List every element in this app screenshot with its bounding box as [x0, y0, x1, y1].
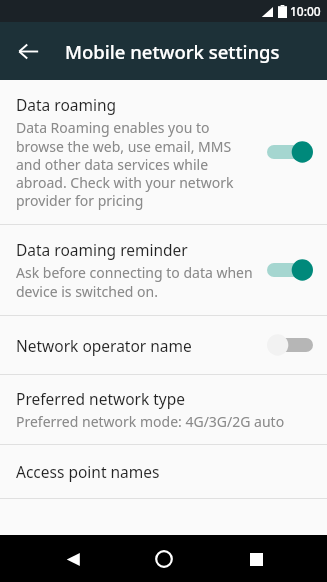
- staticText: Preferred network type: [16, 388, 186, 409]
- button[interactable]: Home: [143, 538, 185, 580]
- button[interactable]: Switch off: [267, 332, 313, 358]
- button[interactable]: Switch on: [267, 257, 313, 283]
- button[interactable]: Back: [52, 538, 94, 580]
- button[interactable]: Data roaming: [0, 80, 327, 224]
- button[interactable]: Switch on: [267, 139, 313, 165]
- staticText: Network operator name: [16, 335, 192, 356]
- button[interactable]: Data roaming reminder: [0, 225, 327, 315]
- staticText: Mobile network settings: [65, 39, 280, 64]
- staticText: 10:00: [290, 3, 321, 19]
- button[interactable]: Access point names: [0, 445, 327, 498]
- button[interactable]: Preferred network type: [0, 375, 327, 444]
- staticText: Data roaming reminder: [16, 239, 188, 260]
- staticText: Ask before connecting to data when devic…: [16, 263, 257, 301]
- button[interactable]: Recents: [235, 538, 277, 580]
- staticText: Data roaming: [16, 94, 117, 115]
- staticText: Access point names: [16, 461, 160, 482]
- button[interactable]: Back: [6, 29, 50, 73]
- staticText: Data Roaming enables you to browse the w…: [16, 118, 257, 210]
- staticText: Preferred network mode: 4G/3G/2G auto: [16, 412, 285, 431]
- button[interactable]: Network operator name: [0, 316, 327, 374]
